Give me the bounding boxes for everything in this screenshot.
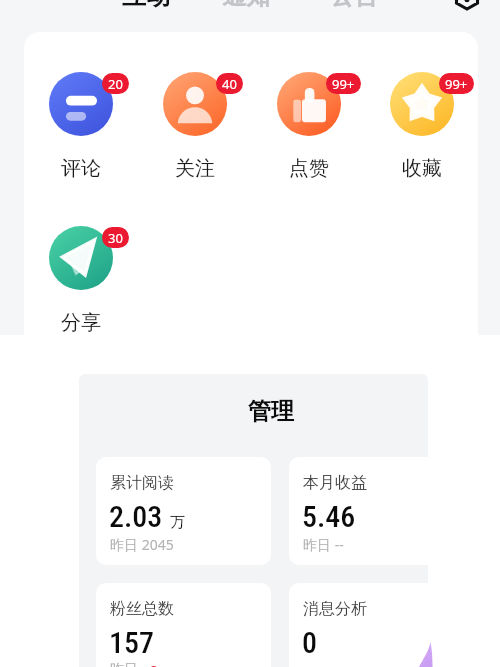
staticText: 20 xyxy=(108,75,123,93)
button[interactable]: 30 xyxy=(24,226,138,335)
staticText: 0 xyxy=(302,625,317,660)
button[interactable]: 粉丝总数 xyxy=(96,583,271,667)
staticText: 关注 xyxy=(138,156,252,181)
staticText: 昨日 -- xyxy=(303,535,344,554)
staticText: 通知 xyxy=(222,0,270,11)
button[interactable]: 40 xyxy=(138,72,252,184)
staticText: 消息分析 xyxy=(303,599,367,619)
staticText: 30 xyxy=(108,229,123,247)
button[interactable]: Shield xyxy=(451,0,483,12)
staticText: 2.03 xyxy=(109,499,163,534)
staticText: 管理 xyxy=(248,397,294,426)
staticText: 40 xyxy=(222,75,237,93)
staticText: 5.46 xyxy=(302,499,356,534)
staticText: 互动 xyxy=(122,0,170,11)
button[interactable]: 本月收益 xyxy=(289,457,428,565)
button[interactable]: 99+ xyxy=(366,72,478,184)
staticText: 157 xyxy=(109,625,154,660)
button[interactable]: 消息分析 xyxy=(289,583,428,667)
staticText: 粉丝总数 xyxy=(110,599,174,619)
staticText: 评论 xyxy=(24,156,138,181)
staticText: 点赞 xyxy=(252,156,366,181)
staticText: 万 xyxy=(170,513,185,532)
staticText: +3 xyxy=(142,661,159,667)
staticText: 本月收益 xyxy=(303,473,367,493)
staticText: 99+ xyxy=(332,75,355,93)
staticText: 昨日 xyxy=(110,661,138,667)
staticText: 累计阅读 xyxy=(110,473,174,493)
staticText: 分享 xyxy=(24,310,138,335)
button[interactable]: 累计阅读 xyxy=(96,457,271,565)
button[interactable]: 公告 xyxy=(330,0,378,11)
staticText: 收藏 xyxy=(366,156,478,181)
staticText: 99+ xyxy=(445,75,468,93)
staticText: 昨日 2045 xyxy=(110,535,174,554)
staticText: 公告 xyxy=(330,0,378,11)
button[interactable]: 99+ xyxy=(252,72,366,184)
button[interactable]: 互动 xyxy=(122,0,170,11)
button[interactable]: 通知 xyxy=(222,0,270,11)
button[interactable]: 20 xyxy=(24,72,138,184)
